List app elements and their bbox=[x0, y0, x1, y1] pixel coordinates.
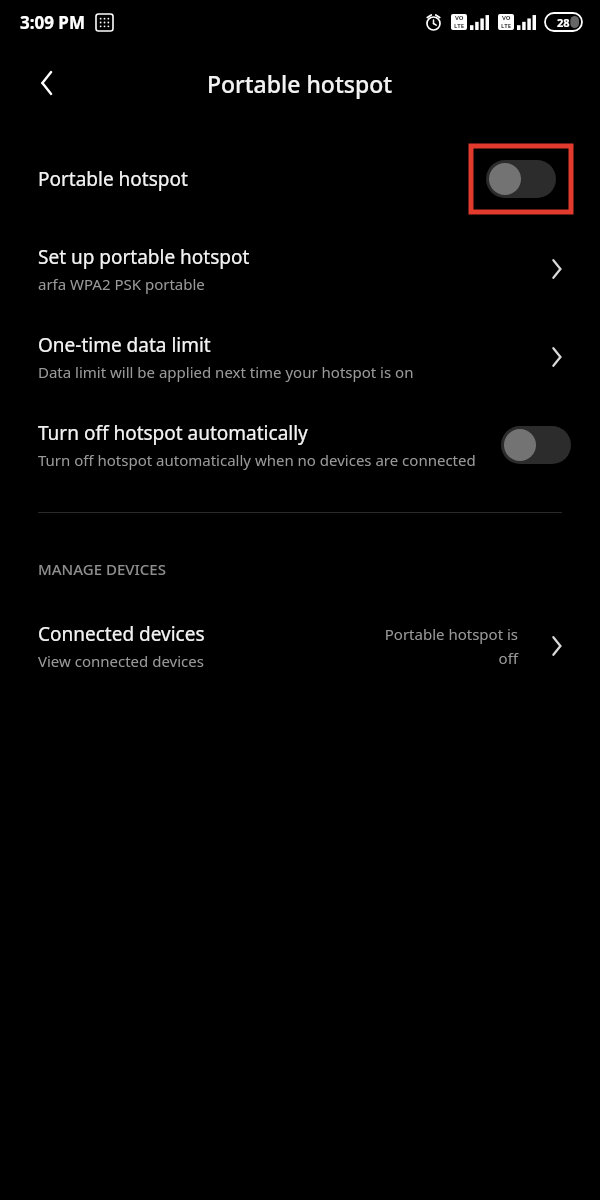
staticText: Portable hotspot bbox=[38, 166, 471, 192]
staticText: VO bbox=[502, 14, 511, 22]
staticText: arfa WPA2 PSK portable bbox=[38, 274, 205, 294]
button[interactable]: Connected devices bbox=[0, 621, 600, 671]
button[interactable]: One-time data limit bbox=[0, 332, 600, 382]
staticText: View connected devices bbox=[38, 651, 204, 671]
staticText: Connected devices bbox=[38, 621, 205, 647]
button[interactable]: Portable hotspot bbox=[0, 146, 600, 212]
staticText: Portable hotspot bbox=[207, 68, 393, 99]
staticText: Portable hotspot is off bbox=[368, 624, 518, 668]
staticText: Set up portable hotspot bbox=[38, 244, 250, 270]
staticText: LTE bbox=[501, 22, 512, 30]
staticText: 28 bbox=[557, 15, 570, 30]
button[interactable]: Portable hotspot toggle bbox=[486, 160, 556, 198]
button[interactable]: Turn off hotspot automatically toggle bbox=[501, 426, 571, 464]
staticText: One-time data limit bbox=[38, 332, 211, 358]
button[interactable]: Turn off hotspot automatically bbox=[0, 420, 600, 470]
staticText: LTE bbox=[454, 22, 465, 30]
staticText: Turn off hotspot automatically bbox=[38, 420, 308, 446]
staticText: MANAGE DEVICES bbox=[38, 559, 166, 579]
button[interactable]: Back bbox=[22, 57, 74, 109]
staticText: Turn off hotspot automatically when no d… bbox=[38, 450, 476, 470]
staticText: VO bbox=[455, 14, 464, 22]
staticText: 3:09 PM bbox=[20, 11, 85, 34]
button[interactable]: Set up portable hotspot bbox=[0, 244, 600, 294]
staticText: Data limit will be applied next time you… bbox=[38, 362, 414, 382]
